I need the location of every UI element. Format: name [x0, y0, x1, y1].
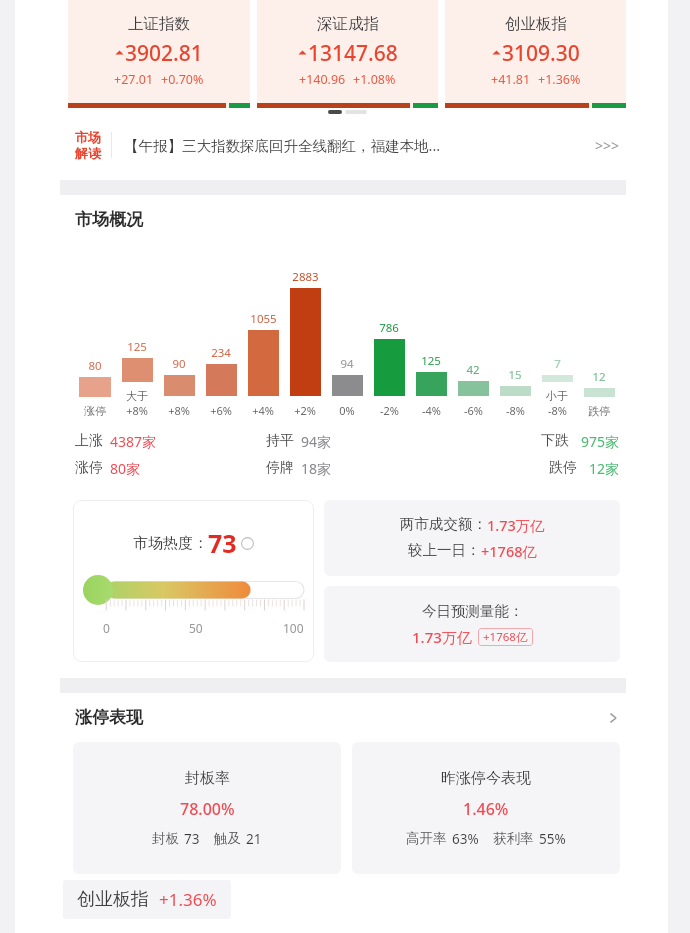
staticText: 50 [189, 620, 203, 636]
button[interactable]: 深证成指 [257, 0, 438, 108]
staticText: +27.01 [114, 71, 154, 88]
staticText: 【午报】三大指数探底回升全线翻红，福建本地... [124, 135, 595, 155]
staticText: 21 [246, 830, 262, 848]
staticText: -8% [506, 403, 525, 418]
staticText: 封板 [152, 830, 179, 847]
staticText: 42 [466, 362, 480, 378]
staticText: 深证成指 [317, 14, 379, 34]
staticText: +1768亿 [483, 629, 528, 645]
staticText: 市场 [75, 129, 101, 145]
staticText: +6% [210, 403, 232, 418]
staticText: 12家 [589, 459, 620, 478]
staticText: 0 [103, 620, 110, 636]
other: 查看更多 [606, 711, 620, 725]
staticText: +41.81 [491, 71, 531, 88]
staticText: 78.00% [180, 798, 235, 820]
staticText: +0.70% [161, 71, 204, 88]
staticText: 786 [379, 320, 399, 336]
button[interactable]: 上证指数 [68, 0, 250, 108]
staticText: 3109.30 [502, 39, 580, 68]
staticText: 解读 [75, 145, 101, 161]
staticText: 昨涨停今表现 [441, 769, 531, 788]
staticText: 创业板指 [77, 888, 149, 911]
staticText: 94家 [301, 432, 332, 451]
staticText: 上证指数 [128, 14, 190, 34]
staticText: 跌停 [549, 459, 577, 477]
staticText: 跌停 [588, 404, 610, 418]
staticText: 持平 [266, 432, 294, 450]
staticText: 7 [554, 356, 561, 372]
staticText: 94 [340, 356, 354, 372]
staticText: 1.73万亿 [412, 627, 472, 647]
staticText: -4% [422, 403, 441, 418]
staticText: 下跌 [541, 432, 569, 450]
staticText: 234 [211, 345, 231, 361]
staticText: 上涨 [75, 432, 103, 450]
staticText: 停牌 [266, 459, 294, 477]
staticText: 0% [339, 403, 355, 418]
staticText: 大于 [126, 389, 148, 403]
staticText: >>> [595, 136, 620, 155]
staticText: -8% [548, 403, 567, 418]
staticText: 3902.81 [125, 39, 203, 68]
staticText: 2883 [292, 269, 319, 285]
staticText: 1055 [250, 311, 277, 327]
staticText: 市场热度： [133, 534, 208, 553]
staticText: 13147.68 [308, 39, 398, 68]
staticText: 两市成交额： [400, 515, 487, 533]
staticText: 15 [508, 367, 522, 383]
button[interactable]: 涨停表现 [75, 707, 620, 728]
staticText: -6% [464, 403, 483, 418]
staticText: 市场概况 [75, 209, 143, 230]
staticText: 63% [452, 830, 479, 848]
staticText: +1.36% [538, 71, 581, 88]
staticText: +8% [126, 403, 148, 418]
button[interactable]: 创业板指 [63, 880, 231, 919]
staticText: +8% [168, 403, 190, 418]
staticText: 80家 [110, 459, 141, 478]
staticText: 125 [421, 353, 441, 369]
staticText: 涨停 [75, 459, 103, 477]
button[interactable]: 市场热度： [73, 500, 314, 662]
staticText: 1.73万亿 [487, 515, 545, 535]
staticText: +140.96 [299, 71, 346, 88]
staticText: 涨停表现 [75, 707, 143, 728]
button[interactable]: 创业板指 [445, 0, 626, 108]
staticText: 975家 [581, 432, 620, 451]
staticText: 80 [88, 358, 102, 374]
staticText: 4387家 [110, 432, 157, 451]
staticText: 100 [283, 620, 304, 636]
staticText: 小于 [546, 389, 568, 403]
staticText: 12 [592, 369, 606, 385]
button[interactable]: 昨涨停今表现 [352, 742, 620, 874]
staticText: 1.46% [463, 798, 509, 820]
staticText: 获利率 [493, 830, 534, 847]
staticText: 90 [172, 356, 186, 372]
staticText: 125 [127, 339, 147, 355]
staticText: 封板率 [185, 769, 230, 788]
staticText: 18家 [301, 459, 332, 478]
staticText: 高开率 [406, 830, 447, 847]
staticText: +1.08% [353, 71, 396, 88]
button[interactable]: 今日预测量能： [324, 586, 620, 662]
staticText: +1768亿 [481, 541, 537, 561]
staticText: +4% [252, 403, 274, 418]
staticText: 今日预测量能： [422, 602, 524, 620]
staticText: 较上一日： [408, 541, 481, 559]
button[interactable]: 两市成交额： [324, 500, 620, 576]
button[interactable]: 市场 [75, 120, 626, 170]
staticText: +1.36% [159, 888, 217, 911]
button[interactable]: 封板率 [73, 742, 341, 874]
staticText: 73 [208, 526, 237, 560]
staticText: 涨停 [84, 404, 106, 418]
other: 说明 [241, 537, 254, 550]
staticText: -2% [380, 403, 399, 418]
staticText: 创业板指 [505, 14, 567, 34]
staticText: 触及 [214, 830, 241, 847]
staticText: +2% [294, 403, 316, 418]
staticText: 55% [539, 830, 566, 848]
staticText: 73 [184, 830, 200, 848]
